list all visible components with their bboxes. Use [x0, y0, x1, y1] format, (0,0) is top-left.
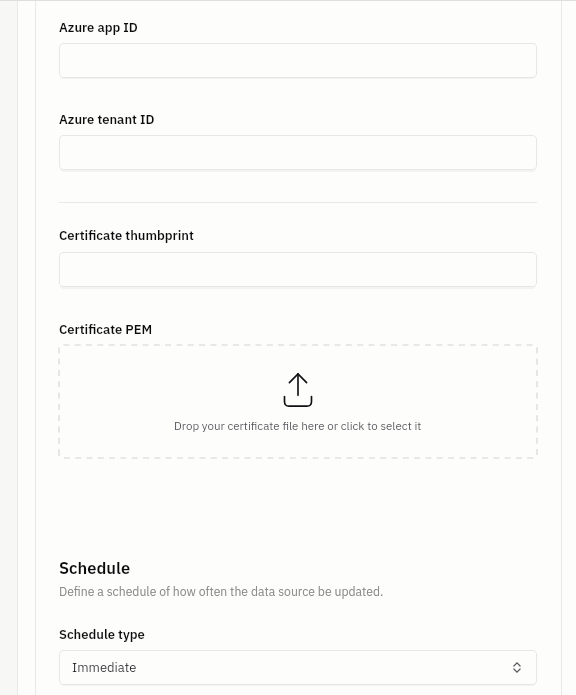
button[interactable]: Immediate	[59, 650, 537, 685]
button[interactable]	[59, 43, 537, 78]
staticText: Define a schedule of how often the data …	[59, 583, 384, 599]
staticText: Certificate thumbprint	[59, 227, 194, 244]
staticText: Schedule	[59, 557, 131, 578]
button[interactable]: Upload certificate file	[59, 345, 537, 458]
button[interactable]	[59, 135, 537, 170]
staticText: Drop your certificate file here or click…	[174, 418, 422, 433]
button[interactable]	[59, 252, 537, 287]
staticText: Immediate	[72, 659, 137, 676]
staticText: Azure app ID	[59, 19, 138, 36]
staticText: Certificate PEM	[59, 321, 153, 338]
staticText: Azure tenant ID	[59, 111, 155, 128]
staticText: Schedule type	[59, 626, 145, 643]
